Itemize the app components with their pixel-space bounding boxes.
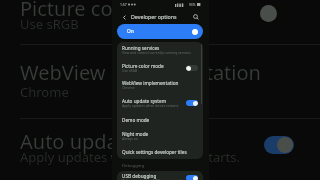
button[interactable]: Back [120, 13, 128, 21]
staticText: Debugging [122, 163, 144, 169]
button[interactable]: Quick settings developer tiles [117, 145, 203, 159]
staticText: Picture color mode [20, 0, 198, 22]
staticText: Quick settings developer tiles [122, 149, 187, 155]
button[interactable]: On [117, 24, 203, 39]
button[interactable]: Auto update system [117, 94, 203, 112]
button[interactable]: USB debugging [117, 171, 203, 180]
staticText: WebView implementation [20, 59, 261, 86]
staticText: Debug mode when USB is connected [122, 178, 181, 180]
button[interactable]: Night mode [117, 128, 203, 145]
staticText: Chrome [122, 85, 135, 90]
staticText: Use sRGB [20, 15, 79, 33]
button[interactable] [259, 4, 292, 23]
button[interactable]: Search [192, 13, 200, 21]
staticText: Auto update system [122, 98, 167, 104]
staticText: Developer options [131, 13, 177, 20]
button[interactable]: Demo mode [117, 112, 203, 128]
staticText: Auto update system [20, 128, 209, 155]
button[interactable]: WebView implementation [117, 77, 203, 94]
staticText: Picture color mode [122, 63, 164, 69]
staticText: Always on [122, 136, 138, 141]
staticText: Apply updates when device restarts. [20, 148, 241, 166]
button[interactable] [264, 136, 294, 154]
staticText: Chrome [20, 83, 69, 101]
staticText: 93% [189, 3, 196, 7]
staticText: View and control currently running servi… [122, 50, 191, 55]
staticText: Demo mode [122, 117, 150, 123]
staticText: Night mode [122, 131, 149, 137]
staticText: WebView implementation [122, 80, 179, 86]
staticText: USB debugging [122, 173, 157, 179]
button[interactable]: Running services [117, 42, 203, 59]
staticText: On [127, 28, 134, 35]
staticText: Running services [122, 45, 160, 51]
staticText: 1:57 [120, 2, 127, 7]
button[interactable]: Picture color mode [117, 59, 203, 77]
staticText: Use sRGB [122, 68, 138, 73]
staticText: Apply updates when device restarts [122, 103, 179, 108]
